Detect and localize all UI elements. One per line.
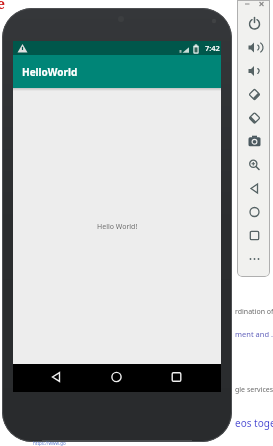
staticText: gle services bbox=[235, 385, 273, 395]
button[interactable] bbox=[103, 364, 129, 392]
staticText: Hello World! bbox=[97, 222, 138, 232]
button[interactable] bbox=[242, 105, 266, 127]
button[interactable] bbox=[163, 364, 189, 392]
staticText: rdination of ev bbox=[235, 307, 273, 317]
staticText: e bbox=[0, 0, 6, 13]
button[interactable] bbox=[43, 364, 69, 392]
button[interactable] bbox=[242, 128, 266, 150]
button[interactable] bbox=[242, 13, 266, 35]
button[interactable]: ment and ... bbox=[235, 329, 273, 339]
staticText: HelloWorld bbox=[22, 65, 78, 79]
button[interactable] bbox=[242, 82, 266, 104]
button[interactable] bbox=[242, 36, 266, 58]
button[interactable] bbox=[242, 151, 266, 173]
staticText: https://www.go bbox=[33, 440, 66, 446]
button[interactable] bbox=[242, 243, 266, 265]
staticText: 7:42 bbox=[205, 43, 220, 53]
button[interactable] bbox=[242, 197, 266, 219]
button[interactable]: eos togethe bbox=[235, 416, 273, 430]
button[interactable] bbox=[242, 59, 266, 81]
button[interactable]: HelloWorld bbox=[13, 55, 221, 88]
button[interactable] bbox=[242, 174, 266, 196]
button[interactable] bbox=[242, 220, 266, 242]
